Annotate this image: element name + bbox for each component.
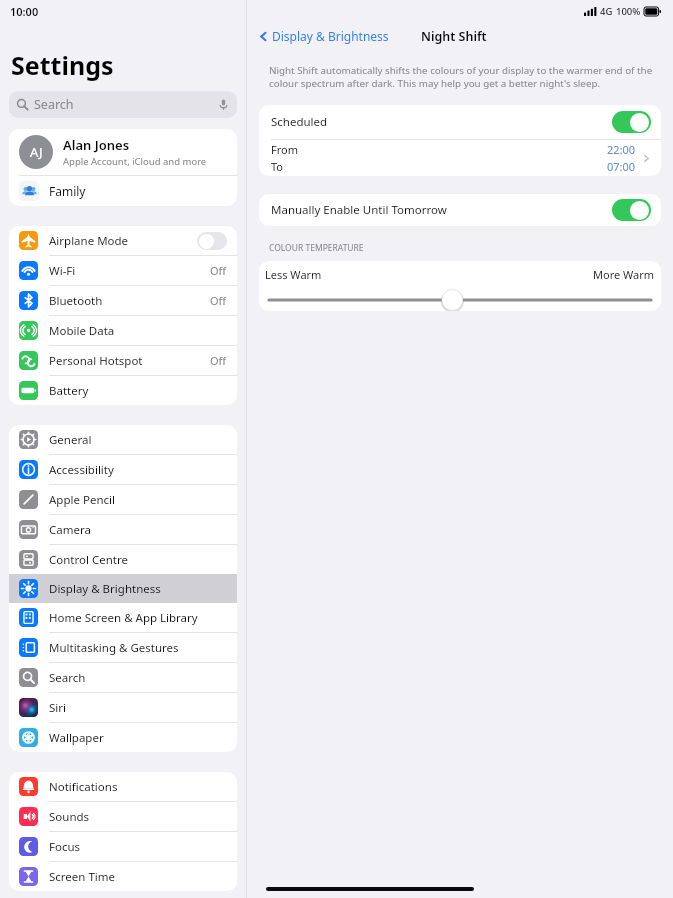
staticText: From bbox=[271, 142, 298, 157]
button[interactable]: Search bbox=[9, 663, 237, 692]
staticText: Manually Enable Until Tomorrow bbox=[271, 202, 447, 218]
button[interactable]: Focus bbox=[9, 832, 237, 861]
button[interactable]: Notifications bbox=[9, 772, 237, 801]
staticText: Scheduled bbox=[271, 114, 328, 130]
staticText: Search bbox=[34, 96, 74, 113]
staticText: 07:00 bbox=[607, 159, 636, 174]
staticText: Apple Account, iCloud and more bbox=[63, 155, 207, 168]
button[interactable]: General bbox=[9, 425, 237, 454]
staticText: Family bbox=[49, 183, 86, 199]
button[interactable]: Siri bbox=[9, 693, 237, 722]
staticText: 10:00 bbox=[10, 4, 39, 19]
button[interactable]: Battery bbox=[9, 376, 237, 405]
button[interactable]: Sounds bbox=[9, 802, 237, 831]
button[interactable]: Scheduled bbox=[259, 105, 661, 139]
staticText: Focus bbox=[49, 839, 81, 855]
staticText: 100% bbox=[616, 5, 641, 18]
button[interactable]: From bbox=[259, 140, 661, 176]
button[interactable]: Scheduled bbox=[612, 111, 651, 133]
staticText: Wi-Fi bbox=[49, 263, 76, 279]
button[interactable]: Manually Enable Until Tomorrow bbox=[259, 194, 661, 226]
staticText: Control Centre bbox=[49, 552, 128, 568]
button[interactable]: Accessibility bbox=[9, 455, 237, 484]
staticText: Night Shift automatically shifts the col… bbox=[269, 64, 655, 90]
button[interactable]: Colour temperature bbox=[259, 290, 661, 310]
staticText: Screen Time bbox=[49, 869, 116, 885]
staticText: Night Shift bbox=[421, 28, 487, 45]
staticText: Search bbox=[49, 670, 86, 686]
button[interactable]: Camera bbox=[9, 515, 237, 544]
staticText: Bluetooth bbox=[49, 293, 103, 309]
staticText: Mobile Data bbox=[49, 323, 115, 339]
staticText: Less Warm bbox=[265, 267, 322, 282]
staticText: COLOUR TEMPERATURE bbox=[269, 242, 364, 254]
staticText: Accessibility bbox=[49, 462, 114, 478]
staticText: Battery bbox=[49, 383, 89, 399]
button[interactable]: AJ bbox=[9, 129, 237, 175]
staticText: Display & Brightness bbox=[49, 581, 161, 597]
staticText: Multitasking & Gestures bbox=[49, 640, 179, 656]
button[interactable]: Display & Brightness bbox=[9, 574, 237, 603]
button[interactable]: Mobile Data bbox=[9, 316, 237, 345]
button[interactable]: Control Centre bbox=[9, 545, 237, 574]
button[interactable]: Wallpaper bbox=[9, 723, 237, 752]
staticText: AJ bbox=[30, 143, 43, 161]
button[interactable]: Apple Pencil bbox=[9, 485, 237, 514]
button[interactable]: Screen Time bbox=[9, 862, 237, 891]
button[interactable]: Display & Brightness bbox=[255, 25, 392, 47]
staticText: Display & Brightness bbox=[272, 28, 389, 44]
staticText: Off bbox=[210, 263, 227, 278]
button[interactable]: Airplane Mode bbox=[197, 232, 227, 250]
button[interactable]: Wi-Fi bbox=[9, 256, 237, 285]
button[interactable]: Search bbox=[9, 91, 237, 118]
button[interactable]: Family bbox=[9, 176, 237, 206]
staticText: Apple Pencil bbox=[49, 492, 115, 508]
staticText: 22:00 bbox=[607, 142, 636, 157]
button[interactable]: Bluetooth bbox=[9, 286, 237, 315]
button[interactable]: Multitasking & Gestures bbox=[9, 633, 237, 662]
staticText: 4G bbox=[600, 5, 613, 18]
button[interactable]: Manually Enable Until Tomorrow bbox=[612, 199, 651, 221]
staticText: General bbox=[49, 432, 92, 448]
staticText: Home Screen & App Library bbox=[49, 610, 198, 626]
staticText: Settings bbox=[11, 48, 114, 82]
staticText: Sounds bbox=[49, 809, 90, 825]
staticText: Off bbox=[210, 353, 227, 368]
staticText: Wallpaper bbox=[49, 730, 104, 746]
staticText: More Warm bbox=[593, 267, 655, 282]
staticText: Personal Hotspot bbox=[49, 353, 143, 369]
staticText: To bbox=[271, 159, 284, 174]
staticText: Off bbox=[210, 293, 227, 308]
button[interactable]: Airplane Mode bbox=[9, 226, 237, 255]
button[interactable]: Personal Hotspot bbox=[9, 346, 237, 375]
button[interactable]: Home Screen & App Library bbox=[9, 603, 237, 632]
staticText: Camera bbox=[49, 522, 91, 538]
staticText: Notifications bbox=[49, 779, 118, 795]
staticText: Siri bbox=[49, 700, 66, 716]
staticText: Airplane Mode bbox=[49, 233, 129, 249]
staticText: Alan Jones bbox=[63, 136, 130, 154]
